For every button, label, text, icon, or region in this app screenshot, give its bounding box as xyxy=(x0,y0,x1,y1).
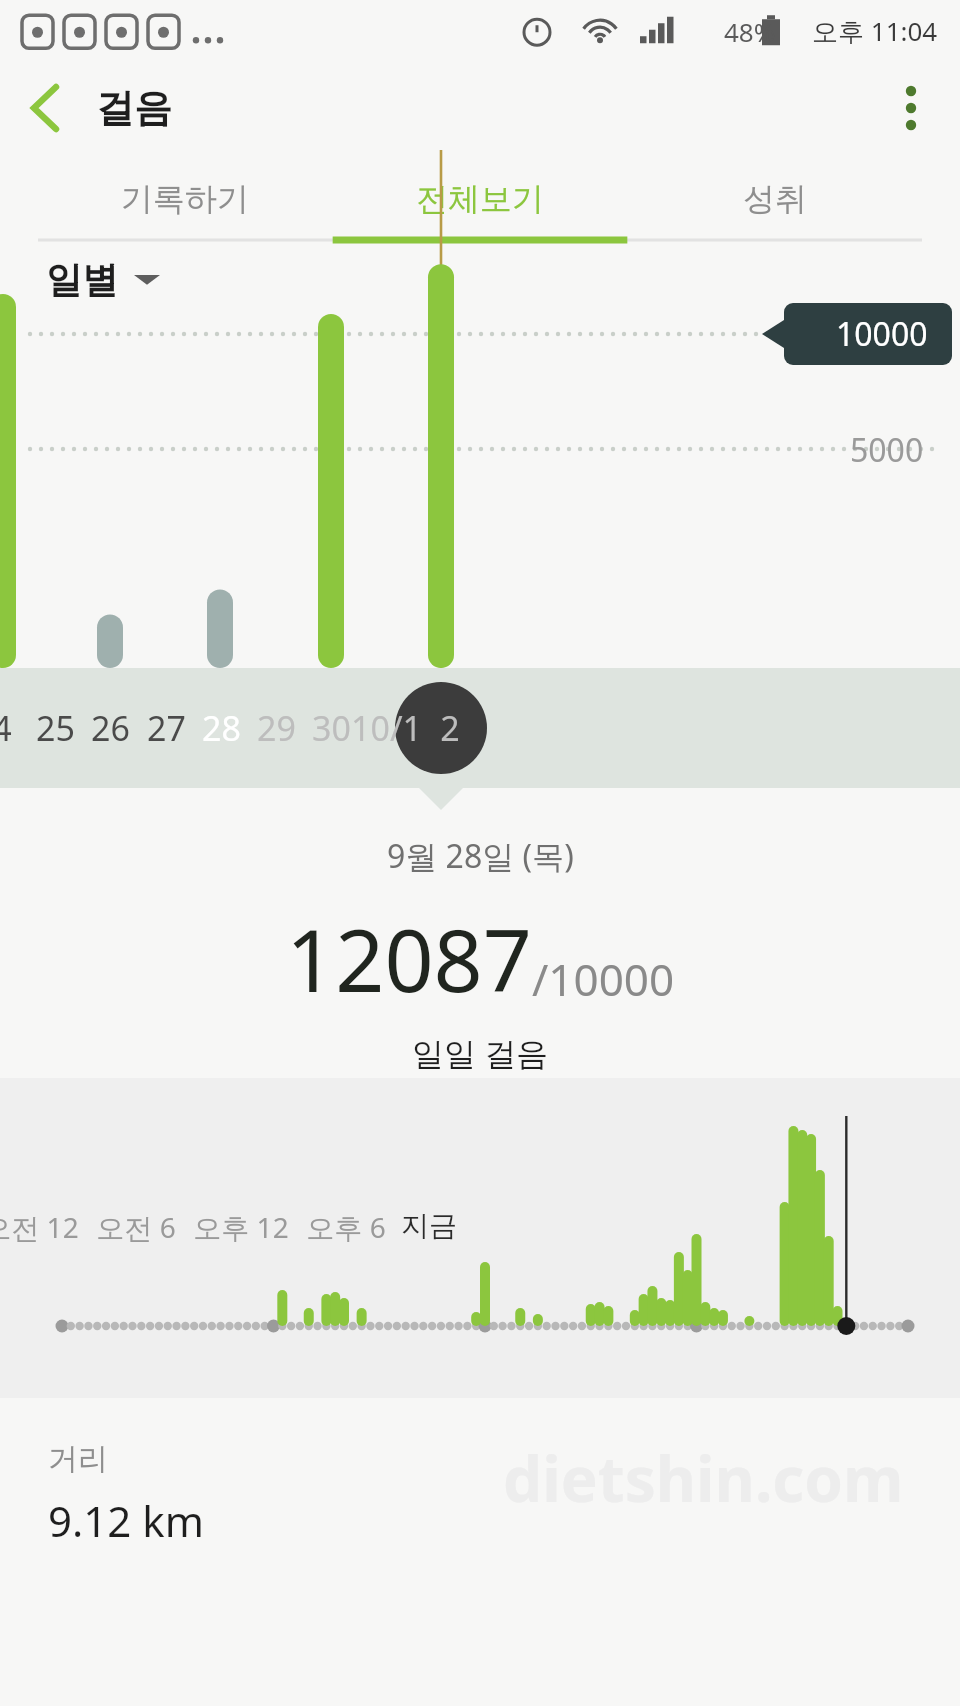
button[interactable]: 25 xyxy=(15,668,95,788)
button[interactable]: 30 xyxy=(291,668,371,788)
button[interactable]: 10/1 xyxy=(346,668,426,788)
staticText: 전체보기 xyxy=(416,179,544,219)
staticText: 걸음 xyxy=(96,84,172,132)
staticText: 오전 6 xyxy=(76,1208,196,1246)
staticText: 27 xyxy=(147,705,186,751)
staticText: 성취 xyxy=(743,179,807,219)
button[interactable]: More options xyxy=(876,73,946,143)
button[interactable]: 28 xyxy=(181,668,261,788)
staticText: 48% xyxy=(724,14,776,49)
staticText: 29 xyxy=(257,705,296,751)
staticText: 26 xyxy=(91,705,130,751)
button[interactable]: 거리 xyxy=(0,1398,960,1706)
staticText: 오후 12 xyxy=(181,1208,301,1246)
staticText: 4 xyxy=(0,705,12,751)
staticText: /10000 xyxy=(532,949,675,1009)
staticText: 거리 xyxy=(48,1440,108,1478)
button[interactable]: 전체보기 xyxy=(332,154,627,244)
staticText: 9월 28일 (목) xyxy=(387,834,574,878)
staticText: 2 xyxy=(440,705,460,751)
staticText: 일별 xyxy=(46,257,118,302)
button[interactable]: 성취 xyxy=(627,154,922,244)
button[interactable]: 26 xyxy=(70,668,150,788)
staticText: 12087 xyxy=(286,900,532,1017)
button[interactable]: Back xyxy=(10,73,80,143)
button[interactable]: 기록하기 xyxy=(38,154,332,244)
button[interactable]: 4 xyxy=(0,668,42,788)
staticText: 9.12 km xyxy=(48,1492,204,1549)
staticText: 10/1 xyxy=(351,705,422,751)
staticText: 28 xyxy=(202,705,241,751)
button[interactable]: 일별 xyxy=(46,244,160,314)
staticText: 오후 6 xyxy=(286,1208,406,1246)
staticText: 10000 xyxy=(836,312,928,356)
button[interactable]: 27 xyxy=(126,668,206,788)
staticText: 오전 12 xyxy=(0,1208,91,1246)
staticText: 일일 걸음 xyxy=(412,1031,549,1075)
staticText: 5000 xyxy=(850,428,924,472)
staticText: 오후 11:04 xyxy=(812,13,938,49)
button[interactable]: 2 xyxy=(410,668,490,788)
staticText: dietshin.com xyxy=(503,1436,904,1520)
staticText: 기록하기 xyxy=(121,179,249,219)
staticText: 25 xyxy=(36,705,75,751)
staticText: 30 xyxy=(312,705,351,751)
button[interactable]: 29 xyxy=(236,668,316,788)
staticText: 지금 xyxy=(369,1208,489,1243)
